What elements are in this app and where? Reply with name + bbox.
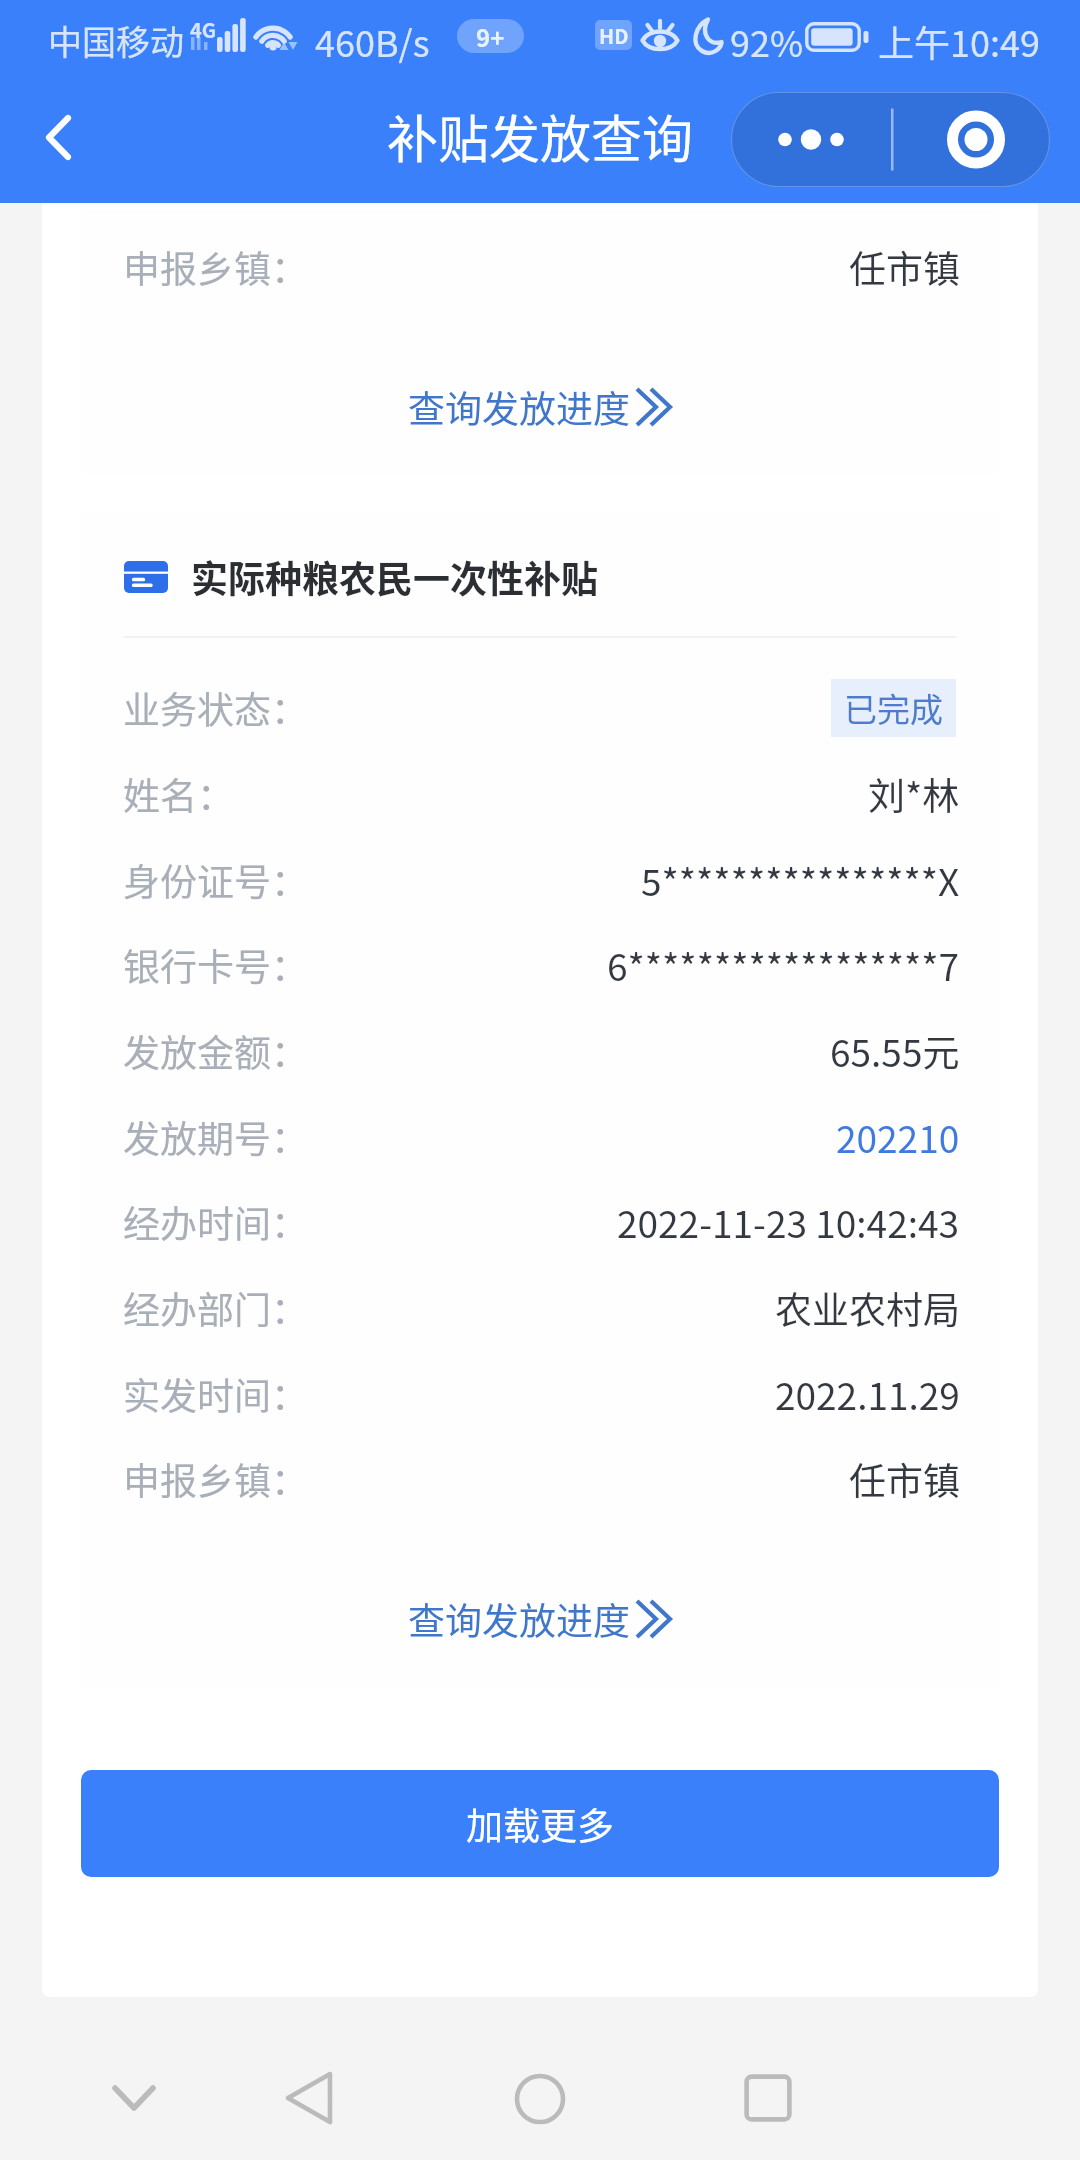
staticText: 查询发放进度 [408,1592,630,1646]
staticText: 已完成 [844,684,943,732]
staticText: 任市镇 [849,240,960,294]
staticText: 查询发放进度 [408,380,630,434]
staticText: 申报乡镇： [123,240,308,294]
staticText: 实发时间： [123,1367,308,1421]
staticText: 银行卡号： [123,938,308,992]
button[interactable]: Hide keyboard [74,2038,194,2158]
staticText: 任市镇 [849,1452,960,1506]
staticText: 2022.11.29 [775,1367,960,1421]
staticText: 65.55元 [830,1024,960,1078]
staticText: 业务状态： [123,681,308,735]
staticText: 460B/s [315,15,430,67]
button[interactable]: Back [249,2038,369,2158]
staticText: 2022-11-23 10:42:43 [617,1195,960,1249]
staticText: 发放期号： [123,1110,308,1164]
button[interactable]: 查询发放进度 [81,1551,999,1687]
button[interactable]: Recent apps [708,2038,828,2158]
staticText: 9+ [476,19,505,53]
staticText: 发放金额： [123,1024,308,1078]
staticText: 上午10:49 [878,15,1040,67]
staticText: 补贴发放查询 [387,99,694,173]
staticText: 实际种粮农民一次性补贴 [191,550,598,604]
staticText: 5****************X [641,853,960,907]
staticText: 刘*林 [868,767,960,821]
staticText: HD [599,21,629,50]
staticText: 加载更多 [466,1797,614,1851]
staticText: 身份证号： [123,853,308,907]
staticText: 92% [730,15,804,67]
staticText: 4G [190,15,217,44]
button[interactable]: 查询发放进度 [81,339,999,475]
staticText: 经办时间： [123,1195,308,1249]
staticText: 经办部门： [123,1281,308,1335]
staticText: 农业农村局 [775,1281,960,1335]
staticText: 姓名： [123,767,234,821]
staticText: 中国移动 [48,16,184,65]
button[interactable]: Mini program menu [731,92,1050,187]
button[interactable]: Home [480,2039,600,2159]
button[interactable]: 加载更多 [81,1770,999,1877]
staticText: 6******************7 [607,938,960,992]
staticText: 202210 [836,1110,960,1164]
button[interactable]: Back [0,80,118,203]
staticText: 申报乡镇： [123,1452,308,1506]
